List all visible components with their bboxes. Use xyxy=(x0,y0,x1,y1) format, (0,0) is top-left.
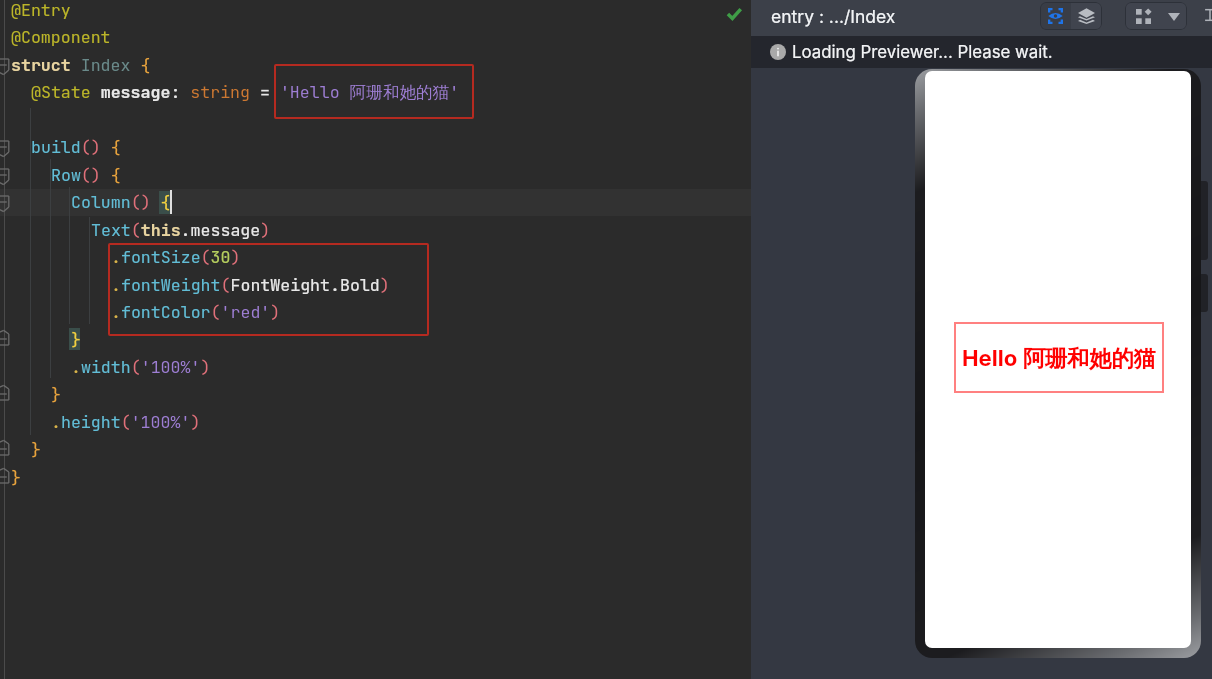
staticText: } xyxy=(51,383,61,405)
staticText: Text(this.message) xyxy=(91,219,271,241)
staticText: @Component xyxy=(11,26,111,48)
button[interactable]: Select device xyxy=(1125,2,1187,30)
staticText: .fontSize(30) xyxy=(111,246,241,268)
staticText: @Entry xyxy=(11,0,71,21)
staticText: } xyxy=(11,466,21,488)
staticText: } xyxy=(31,438,41,460)
staticText: } xyxy=(71,328,81,350)
staticText: .fontColor('red') xyxy=(111,301,281,323)
staticText: .fontWeight(FontWeight.Bold) xyxy=(111,274,390,296)
staticText: Hello 阿珊和她的猫 xyxy=(962,344,1156,372)
button[interactable]: Preview xyxy=(1040,2,1071,30)
staticText: @State message: string = 'Hello 阿珊和她的猫' xyxy=(31,81,460,103)
staticText: .height('100%') xyxy=(51,411,201,433)
staticText: build() { xyxy=(31,136,121,158)
staticText: entry : .../Index xyxy=(771,6,896,27)
staticText: Column() { xyxy=(71,191,171,213)
button[interactable]: No problems found xyxy=(722,2,746,26)
button[interactable]: Layers xyxy=(1071,2,1102,30)
button[interactable]: Measure xyxy=(1203,6,1212,24)
staticText: } xyxy=(71,328,81,350)
staticText: Loading Previewer... Please wait. xyxy=(792,42,1053,62)
staticText: Row() { xyxy=(51,164,121,186)
staticText: .width('100%') xyxy=(71,356,211,378)
staticText: struct Index { xyxy=(11,54,151,76)
